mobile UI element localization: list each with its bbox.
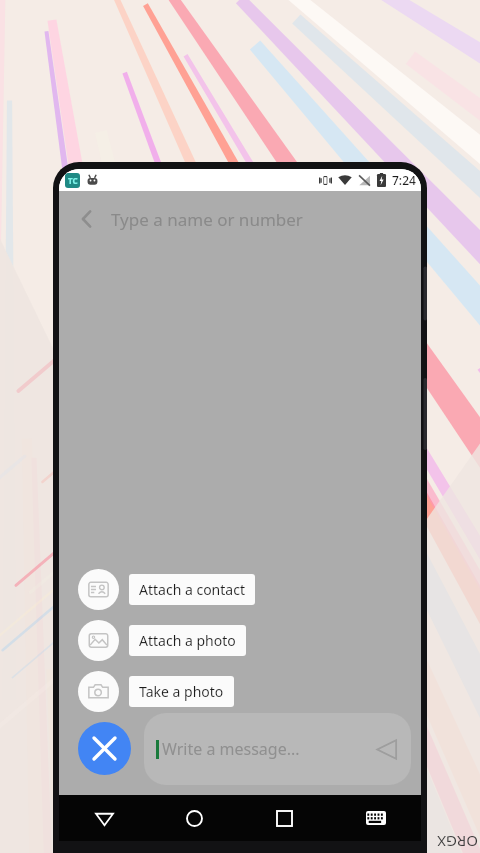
button[interactable]: Back	[63, 195, 111, 243]
button[interactable]: Home	[149, 795, 239, 841]
staticText: Attach a photo	[139, 631, 236, 650]
button[interactable]: Type a name or number	[111, 191, 421, 247]
button[interactable]: Keyboard	[330, 795, 421, 841]
staticText: TC	[68, 175, 78, 186]
button[interactable]: Recent apps	[239, 795, 330, 841]
button[interactable]: Back	[59, 795, 149, 841]
staticText: Write a message...	[162, 738, 365, 760]
staticText: Attach a contact	[139, 580, 245, 599]
staticText: Take a photo	[139, 682, 224, 701]
button[interactable]: Send	[365, 728, 407, 770]
button[interactable]: Write a message...	[144, 713, 411, 785]
staticText: ORGX	[437, 832, 478, 852]
staticText: Type a name or number	[111, 208, 303, 231]
button[interactable]: Close attachment menu	[78, 722, 131, 775]
staticText: 7:24	[392, 172, 416, 188]
button[interactable]: Attach a photo	[78, 620, 246, 661]
button[interactable]: Attach a contact	[78, 569, 255, 610]
button[interactable]: Take a photo	[78, 671, 234, 712]
